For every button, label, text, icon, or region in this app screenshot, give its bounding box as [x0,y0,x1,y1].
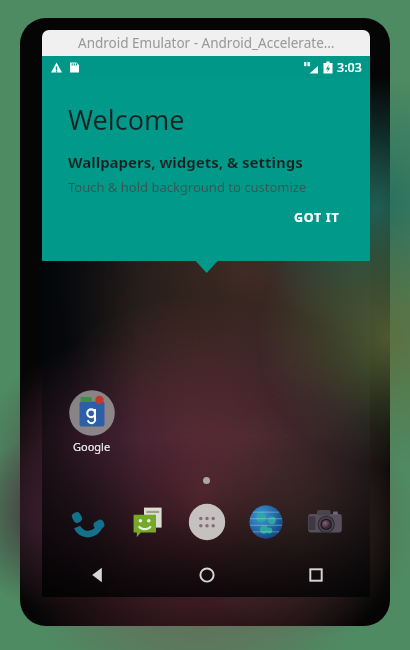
staticText: Touch & hold background to customize [68,178,307,196]
staticText: Wallpapers, widgets, & settings [68,152,303,172]
staticText: Android Emulator - Android_Accelerate… [78,34,335,52]
button[interactable]: Home [152,553,261,597]
button[interactable]: Messaging [118,496,177,548]
button[interactable]: Phone [58,496,118,548]
staticText: 3:03 [337,59,362,76]
button[interactable]: Apps [177,496,236,548]
staticText: GOT IT [294,209,340,226]
button[interactable]: Browser [236,496,295,548]
button[interactable]: Camera [295,496,354,548]
button[interactable]: GOT IT [288,204,346,231]
button[interactable]: Recents [261,553,370,597]
staticText: Google [73,439,111,454]
button[interactable]: Back [42,553,152,597]
button[interactable]: Google [68,389,116,454]
staticText: Welcome [68,101,185,138]
